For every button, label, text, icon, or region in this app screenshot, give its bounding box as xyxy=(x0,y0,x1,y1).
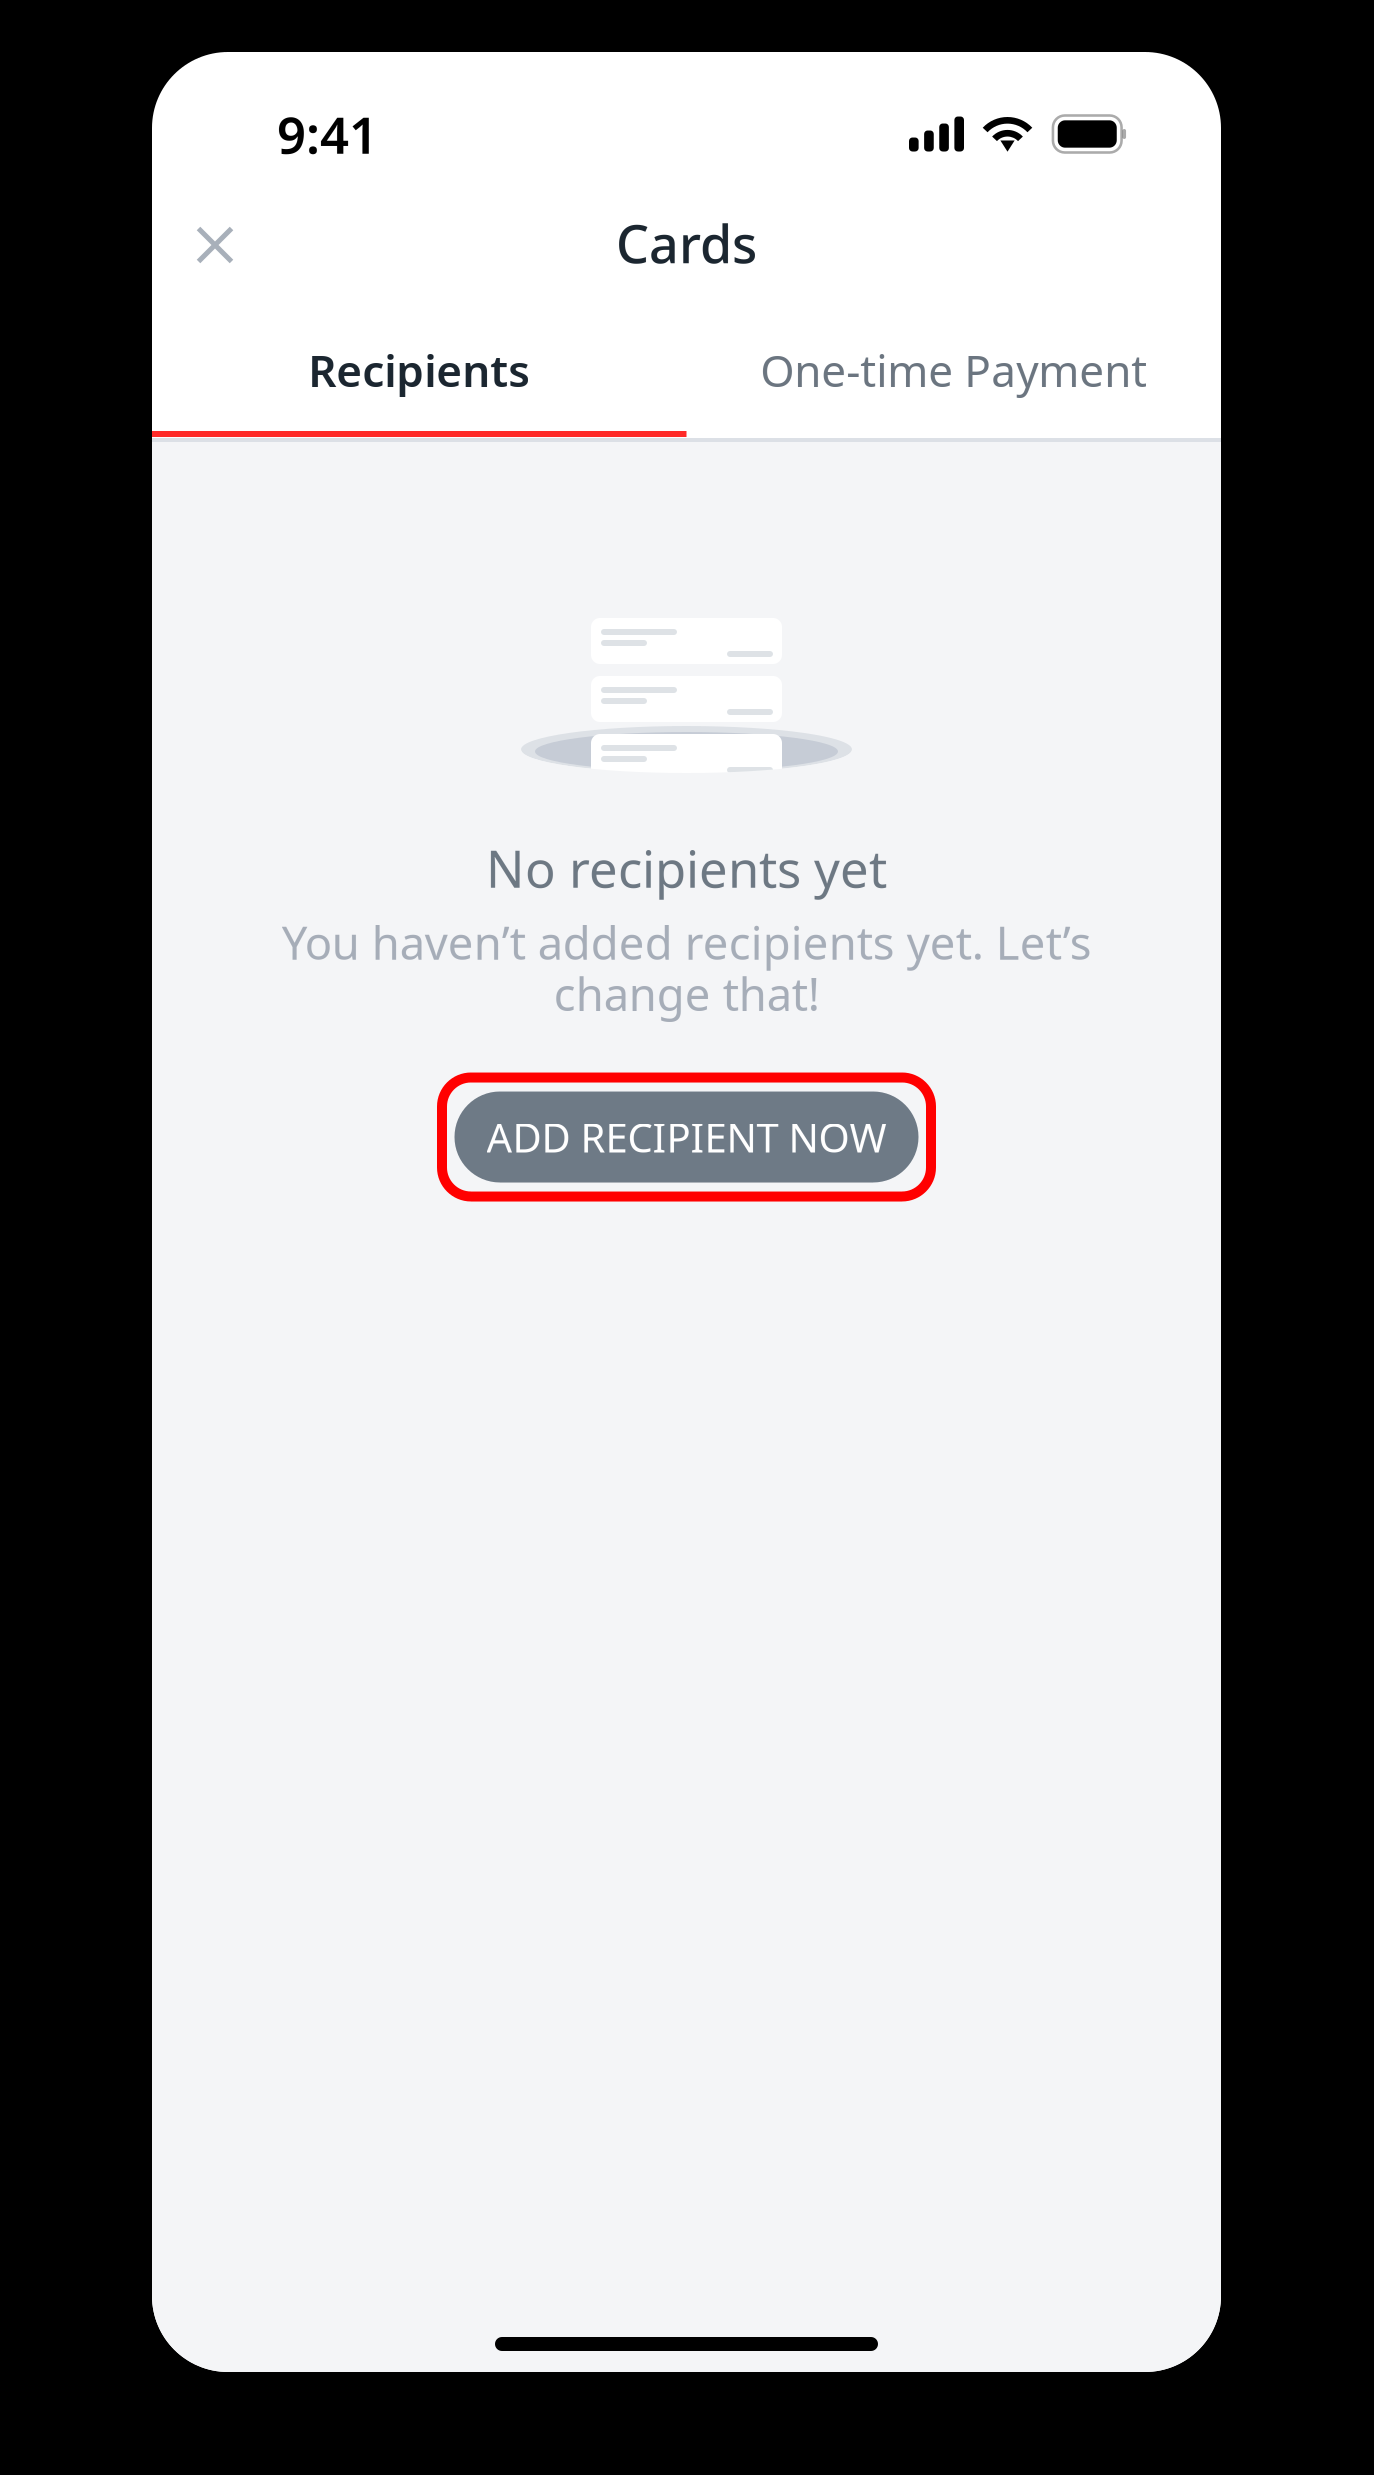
button[interactable]: One-time Payment xyxy=(686,323,1221,417)
staticText: Recipients xyxy=(308,341,530,399)
staticText: ADD RECIPIENT NOW xyxy=(486,1110,886,1163)
staticText: No recipients yet xyxy=(486,834,887,902)
staticText: Cards xyxy=(616,208,757,278)
button[interactable]: ADD RECIPIENT NOW xyxy=(454,1091,918,1182)
staticText: You haven’t added recipients yet. Let’s … xyxy=(281,912,1091,1023)
staticText: 9:41 xyxy=(277,100,378,168)
button[interactable]: Close xyxy=(172,202,258,288)
staticText: One-time Payment xyxy=(760,341,1147,399)
button[interactable]: Recipients xyxy=(152,323,686,417)
